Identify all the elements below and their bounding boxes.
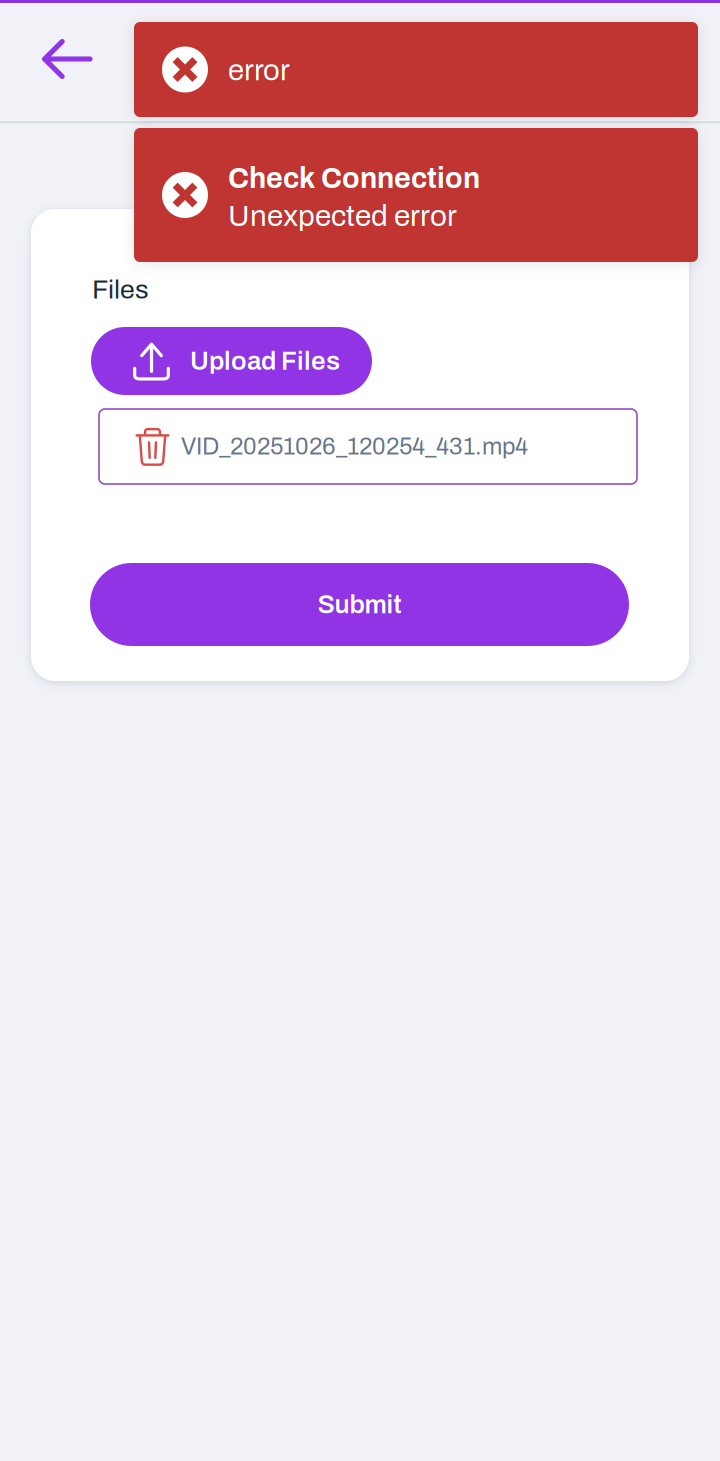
staticText: Files xyxy=(92,275,149,304)
button[interactable]: VID_20251026_120254_431.mp4 xyxy=(99,409,637,484)
button[interactable]: Check Connection xyxy=(134,128,698,262)
button[interactable]: Upload Files xyxy=(91,327,372,395)
button[interactable]: Submit xyxy=(90,563,629,646)
staticText: Check Connection xyxy=(228,163,480,194)
button[interactable]: error xyxy=(134,22,698,117)
staticText: VID_20251026_120254_431.mp4 xyxy=(181,434,528,459)
staticText: error xyxy=(228,54,290,86)
staticText: Unexpected error xyxy=(228,200,457,232)
button[interactable]: Back xyxy=(21,14,111,104)
staticText: Upload Files xyxy=(190,347,340,375)
staticText: Submit xyxy=(317,590,401,619)
